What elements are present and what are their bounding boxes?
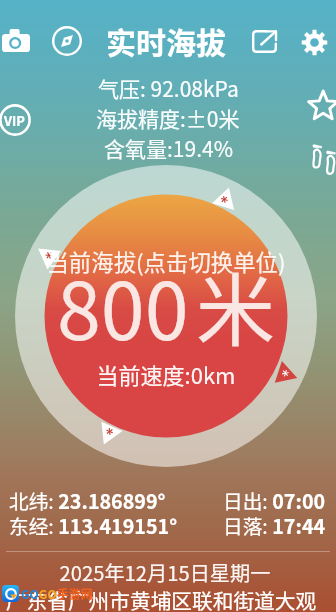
staticText: 东经: 113.419151° — [9, 511, 178, 540]
staticText: VIP — [4, 111, 26, 130]
button[interactable]: VIP — [0, 104, 31, 136]
staticText: 实时海拔 — [106, 19, 226, 62]
staticText: 米 — [196, 248, 275, 362]
button[interactable]: Track record — [308, 142, 336, 178]
staticText: 气压: 92.08kPa — [98, 73, 239, 103]
staticText: 当前速度:0km — [15, 358, 317, 390]
staticText: 2025年12月15日星期一 — [0, 558, 333, 587]
staticText: 广东省广州市黄埔区联和街道大观 — [0, 585, 329, 612]
staticText: 800 — [57, 248, 189, 362]
staticText: 含氧量:19.4% — [104, 133, 233, 163]
staticText: 当前海拔(点击切换单位) — [15, 245, 317, 277]
button[interactable]: Camera — [0, 19, 37, 61]
staticText: 海拔精度:±0米 — [96, 103, 240, 133]
button[interactable]: 当前海拔(点击切换单位) — [15, 165, 317, 467]
staticText: 日出: 07:00 — [223, 486, 326, 515]
staticText: 日落: 17:44 — [223, 511, 326, 540]
button[interactable]: Share — [244, 21, 284, 61]
button[interactable]: Compass — [46, 20, 88, 62]
staticText: GOGO手游网 — [21, 585, 93, 602]
button[interactable]: Settings — [294, 22, 334, 62]
staticText: 北纬: 23.186899° — [9, 486, 166, 515]
button[interactable]: Favorite — [305, 88, 336, 124]
